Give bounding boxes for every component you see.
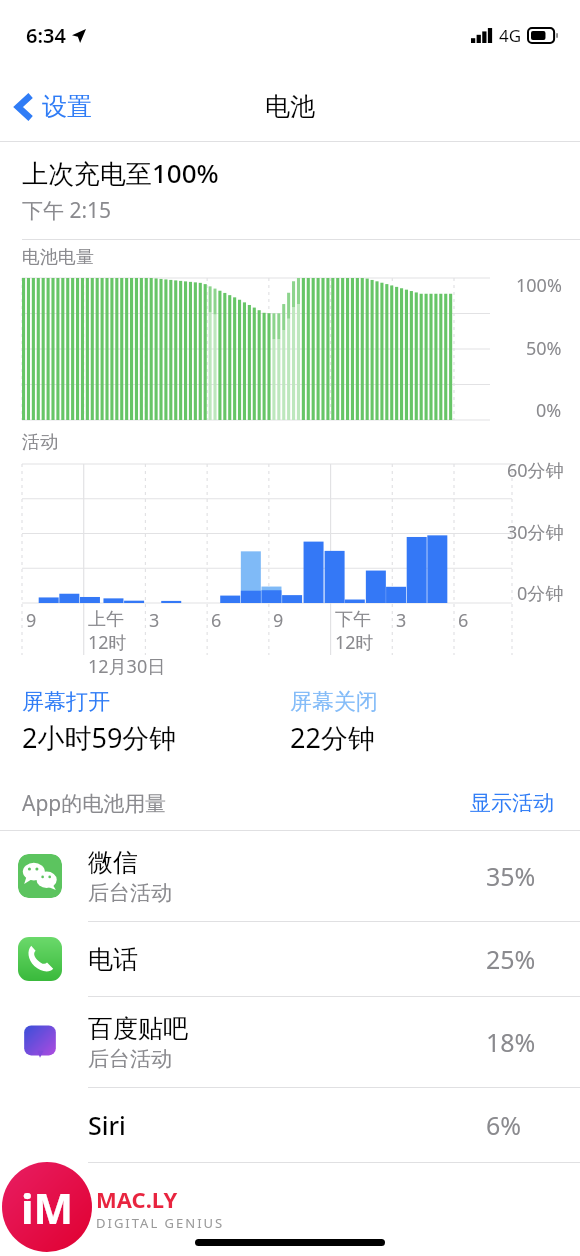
staticText: 6	[211, 608, 222, 633]
staticText: 6%	[486, 1108, 558, 1142]
staticText: 屏幕关闭	[290, 688, 378, 716]
staticText: 显示活动	[470, 790, 554, 816]
staticText: 12月30日	[88, 654, 166, 679]
button[interactable]: 微信	[0, 831, 580, 921]
staticText: 25%	[486, 942, 558, 976]
staticText: 6	[458, 608, 469, 633]
other: 微信	[18, 854, 62, 898]
staticText: 35%	[486, 859, 558, 893]
staticText: 9	[26, 608, 37, 633]
button[interactable]: 显示活动	[466, 786, 558, 820]
staticText: 后台活动	[88, 880, 172, 906]
staticText: 电池电量	[22, 246, 94, 269]
staticText: 电池	[265, 91, 315, 122]
staticText: 3	[149, 608, 160, 633]
staticText: 0%	[536, 398, 562, 423]
staticText: iM	[21, 1179, 74, 1236]
staticText: 50%	[526, 336, 562, 361]
staticText: 4G	[499, 24, 522, 47]
button[interactable]: 百度贴吧	[0, 997, 580, 1087]
staticText: MAC.LY	[96, 1184, 178, 1214]
staticText: App的电池用量	[22, 789, 167, 818]
staticText: 屏幕打开	[22, 688, 110, 716]
staticText: 60分钟	[507, 458, 564, 483]
button[interactable]: 电话	[0, 922, 580, 996]
staticText: 设置	[42, 91, 92, 122]
staticText: 活动	[22, 431, 58, 454]
staticText: DIGITAL GENIUS	[96, 1214, 225, 1232]
staticText: 100%	[516, 273, 562, 298]
staticText: 电话	[88, 944, 138, 975]
staticText: 3	[396, 608, 407, 633]
staticText: 上午 12时	[88, 608, 127, 654]
staticText: 下午 12时	[335, 608, 374, 654]
other: 电话	[18, 937, 62, 981]
staticText: 下午 2:15	[22, 196, 112, 225]
staticText: 上次充电至100%	[22, 155, 219, 191]
staticText: 6:34	[26, 22, 66, 49]
staticText: 18%	[486, 1025, 558, 1059]
button[interactable]: 设置	[0, 85, 104, 128]
staticText: Siri	[88, 1108, 126, 1142]
staticText: 30分钟	[507, 520, 564, 545]
staticText: 2小时59分钟	[22, 719, 177, 756]
staticText: 微信	[88, 847, 138, 878]
other: 百度贴吧	[18, 1020, 62, 1064]
button[interactable]: Siri	[0, 1088, 580, 1162]
staticText: 22分钟	[290, 719, 375, 756]
staticText: 0分钟	[517, 581, 564, 606]
staticText: 百度贴吧	[88, 1013, 188, 1044]
staticText: 9	[273, 608, 284, 633]
staticText: 后台活动	[88, 1046, 172, 1072]
